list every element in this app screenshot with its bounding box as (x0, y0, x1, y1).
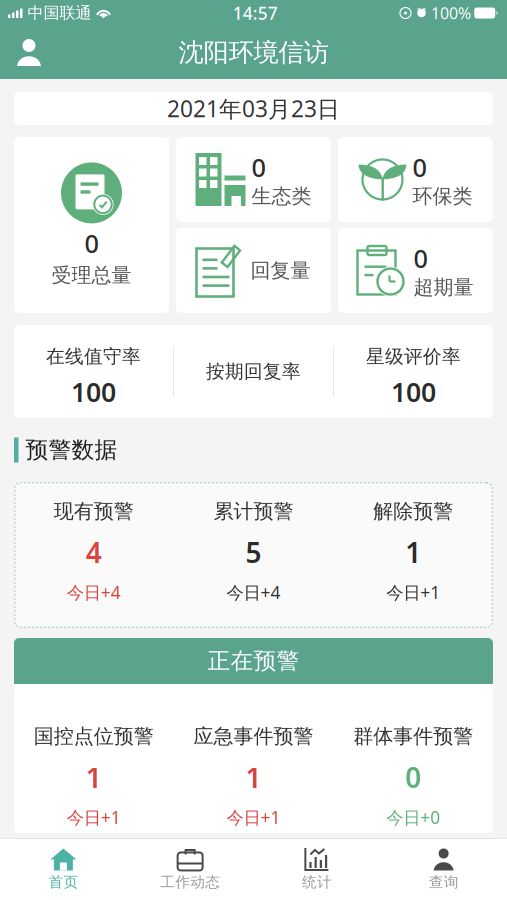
staticText: 预警数据 (25, 436, 117, 464)
button[interactable]: 工作动态 (127, 841, 254, 898)
staticText: 今日+1 (226, 806, 280, 829)
staticText: 1 (86, 759, 102, 796)
staticText: 超期量 (413, 275, 473, 300)
button[interactable]: 0 (14, 137, 169, 313)
staticText: 累计预警 (213, 499, 293, 524)
button[interactable]: 0 (338, 137, 493, 222)
staticText: 生态类 (251, 184, 311, 209)
staticText: 1 (245, 759, 261, 796)
staticText: 首页 (48, 873, 78, 891)
staticText: 14:57 (233, 1, 278, 24)
button[interactable]: 查询 (380, 841, 507, 898)
staticText: 正在预警 (207, 647, 299, 675)
staticText: 1 (405, 534, 421, 571)
staticText: 100 (71, 374, 116, 409)
staticText: 0 (405, 759, 421, 796)
staticText: 今日+4 (67, 581, 121, 604)
staticText: 0 (412, 150, 426, 184)
staticText: 今日+4 (226, 581, 280, 604)
staticText: 解除预警 (373, 499, 453, 524)
staticText: 2021年03月23日 (167, 93, 340, 123)
staticText: 受理总量 (51, 263, 131, 288)
staticText: 按期回复率 (206, 360, 301, 383)
staticText: 国控点位预警 (34, 724, 154, 749)
staticText: 100 (391, 374, 436, 409)
staticText: 4 (86, 534, 102, 571)
button[interactable]: 0 (338, 228, 493, 313)
button[interactable]: 统计 (253, 841, 380, 898)
button[interactable]: 回复量 (176, 228, 331, 313)
button[interactable]: Profile (6, 29, 52, 75)
staticText: 统计 (302, 873, 332, 891)
staticText: 0 (413, 241, 427, 275)
staticText: 现有预警 (54, 499, 134, 524)
staticText: 0 (84, 226, 98, 260)
button[interactable]: 首页 (0, 841, 127, 898)
staticText: 回复量 (250, 258, 310, 283)
staticText: 星级评价率 (366, 345, 461, 368)
staticText: 今日+1 (67, 806, 121, 829)
staticText: 中国联通 (27, 3, 91, 23)
staticText: 应急事件预警 (193, 724, 313, 749)
staticText: 沈阳环境信访 (178, 37, 328, 68)
staticText: 在线值守率 (46, 345, 141, 368)
staticText: 今日+1 (386, 581, 440, 604)
staticText: 5 (245, 534, 261, 571)
staticText: 群体事件预警 (353, 724, 473, 749)
staticText: 环保类 (412, 184, 472, 209)
staticText: 工作动态 (160, 873, 220, 891)
staticText: 今日+0 (386, 806, 440, 829)
staticText: 查询 (429, 873, 459, 891)
staticText: 100% (431, 2, 471, 24)
button[interactable]: 0 (176, 137, 331, 222)
staticText: 0 (251, 150, 265, 184)
